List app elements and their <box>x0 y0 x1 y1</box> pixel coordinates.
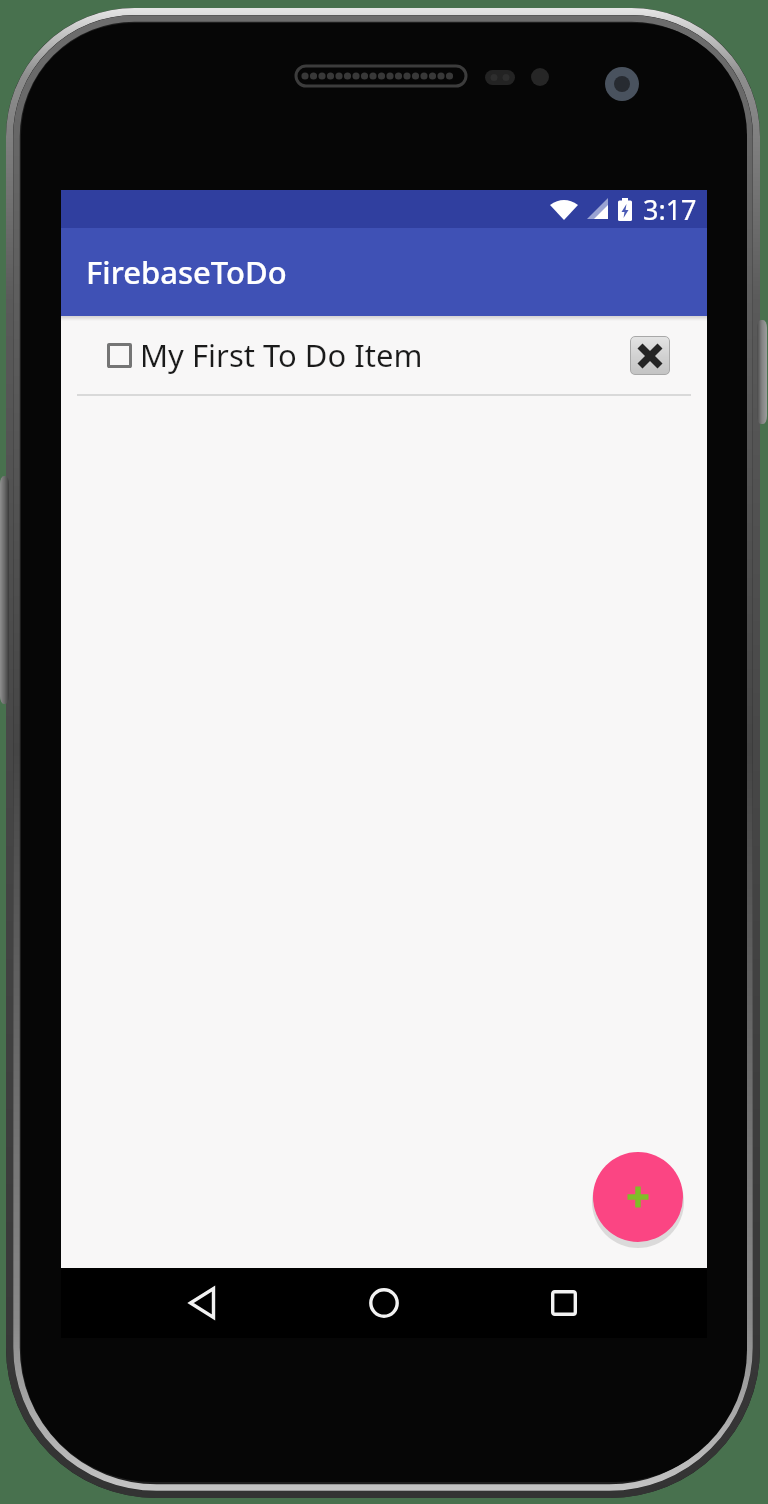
staticText: My First To Do Item <box>140 334 423 376</box>
button[interactable] <box>534 1268 594 1338</box>
button[interactable] <box>593 1152 683 1242</box>
staticText: FirebaseToDo <box>86 251 287 293</box>
staticText: 3:17 <box>643 191 697 228</box>
button[interactable] <box>172 1268 232 1338</box>
button[interactable] <box>354 1268 414 1338</box>
button[interactable] <box>107 343 132 368</box>
button[interactable] <box>630 336 670 375</box>
button[interactable]: My First To Do Item <box>61 316 707 394</box>
